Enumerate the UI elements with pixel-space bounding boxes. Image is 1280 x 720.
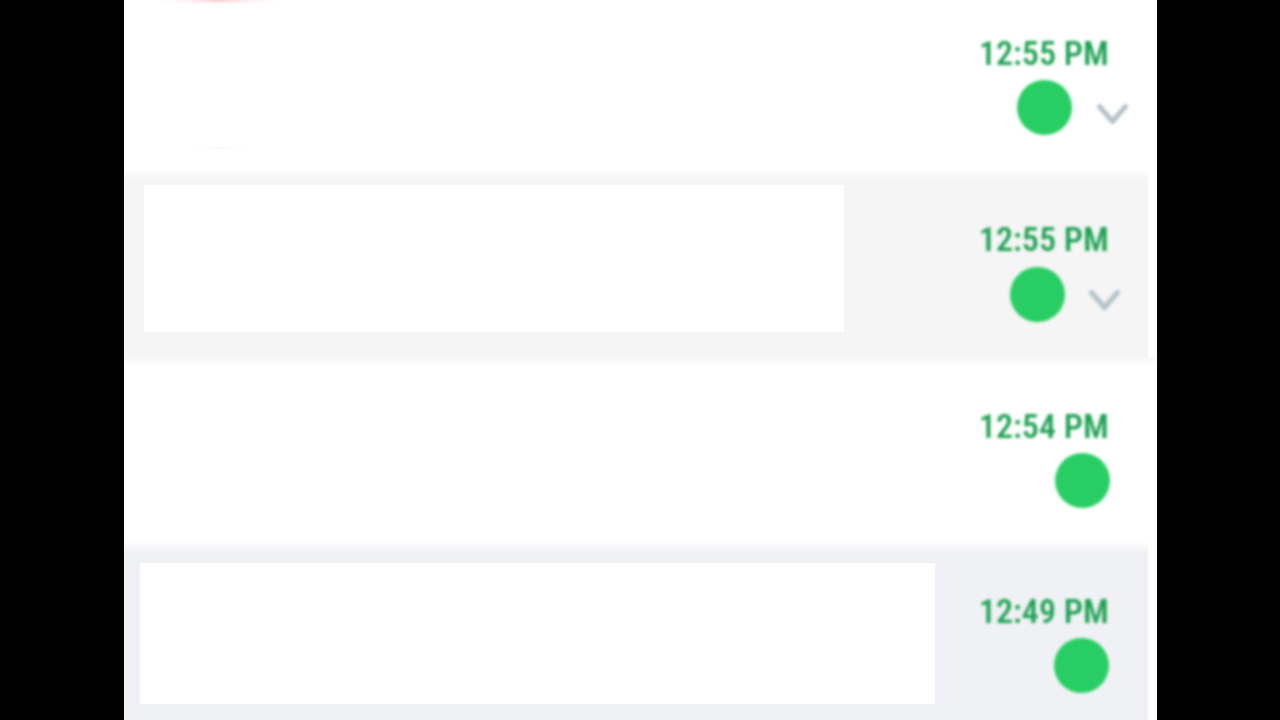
other: Expand: [1097, 104, 1128, 124]
button[interactable]: 12:55 PM: [124, 168, 1157, 357]
staticText: 12:49 PM: [979, 591, 1109, 631]
other: Expand: [1089, 290, 1120, 310]
button[interactable]: 12:54 PM: [124, 357, 1157, 541]
button[interactable]: 12:49 PM: [124, 541, 1157, 720]
button[interactable]: 12:55 PM: [124, 0, 1157, 168]
staticText: 12:55 PM: [979, 33, 1109, 73]
staticText: 12:54 PM: [979, 406, 1109, 446]
staticText: 12:55 PM: [979, 219, 1109, 259]
